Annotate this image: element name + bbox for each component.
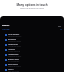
button[interactable]: Wi-Fi network bbox=[5, 32, 61, 37]
staticText: Devices bbox=[2, 24, 10, 27]
button[interactable]: Battery saver bbox=[5, 57, 61, 62]
button[interactable]: Add new bbox=[2, 27, 62, 30]
button[interactable]: Bluetooth bbox=[5, 37, 61, 42]
staticText: Connected at home bbox=[8, 35, 22, 37]
button[interactable]: Devices bbox=[2, 24, 62, 27]
staticText: Edit bbox=[58, 25, 62, 27]
staticText: All bbox=[60, 28, 62, 30]
staticText: Add new bbox=[2, 28, 10, 30]
staticText: Precise, always on bbox=[8, 50, 21, 52]
staticText: Two devices paired bbox=[8, 40, 21, 42]
staticText: Mobile data bbox=[8, 43, 18, 45]
staticText: Notifications bbox=[8, 53, 19, 55]
button[interactable]: Notifications bbox=[5, 52, 61, 57]
staticText: Location bbox=[8, 48, 16, 50]
button[interactable]: Sound bbox=[5, 67, 61, 72]
staticText: Allowed for 24 apps bbox=[8, 55, 22, 57]
staticText: Dark theme bbox=[8, 63, 18, 65]
staticText: Many options in touch bbox=[0, 3, 64, 7]
staticText: Sound bbox=[8, 68, 14, 70]
button[interactable]: Mobile data bbox=[5, 42, 61, 47]
button[interactable]: Dark theme bbox=[5, 62, 61, 67]
staticText: On at 20 percent bbox=[8, 60, 20, 62]
staticText: Battery saver bbox=[8, 58, 19, 60]
staticText: Follows the system bbox=[8, 65, 21, 67]
staticText: Bluetooth bbox=[8, 38, 17, 40]
staticText: Select the features you want bbox=[0, 7, 64, 9]
staticText: Wi-Fi network bbox=[8, 33, 20, 35]
button[interactable]: Location bbox=[5, 47, 61, 52]
staticText: 12.4 GB this month bbox=[8, 45, 21, 47]
staticText: Ring and vibrate bbox=[8, 70, 20, 72]
